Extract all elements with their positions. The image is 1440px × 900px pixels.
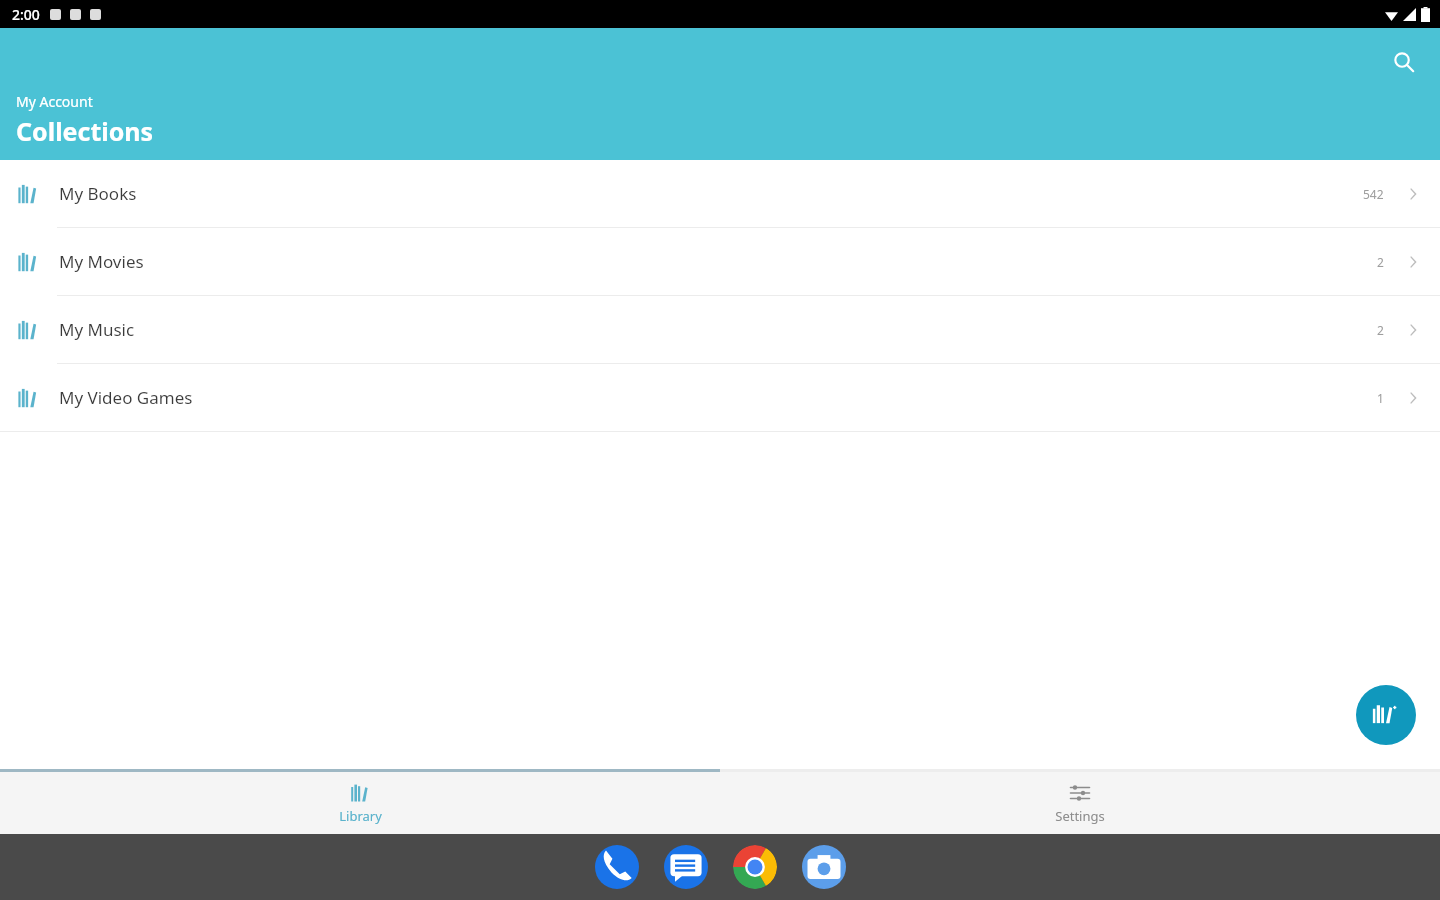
- button[interactable]: My Movies: [0, 228, 1440, 296]
- button[interactable]: Add collection: [1356, 685, 1416, 745]
- staticText: 542: [1363, 186, 1384, 202]
- staticText: 1: [1377, 390, 1384, 406]
- staticText: Collections: [16, 114, 154, 148]
- staticText: My Movies: [59, 250, 1377, 273]
- button[interactable]: Library: [0, 772, 720, 834]
- staticText: 2: [1377, 254, 1384, 270]
- staticText: My Music: [59, 318, 1377, 341]
- button[interactable]: App: [802, 845, 846, 889]
- staticText: My Books: [59, 182, 1363, 205]
- button[interactable]: My Books: [0, 160, 1440, 228]
- staticText: 2: [1377, 322, 1384, 338]
- button[interactable]: App: [595, 845, 639, 889]
- button[interactable]: My Music: [0, 296, 1440, 364]
- staticText: Library: [339, 807, 382, 825]
- button[interactable]: App: [664, 845, 708, 889]
- button[interactable]: Settings: [720, 772, 1440, 834]
- staticText: Settings: [1055, 807, 1105, 825]
- button[interactable]: My Video Games: [0, 364, 1440, 432]
- staticText: 2:00: [12, 5, 40, 24]
- button[interactable]: Search: [1380, 38, 1428, 86]
- staticText: My Video Games: [59, 386, 1377, 409]
- staticText: My Account: [16, 92, 93, 111]
- button[interactable]: Chrome: [733, 845, 777, 889]
